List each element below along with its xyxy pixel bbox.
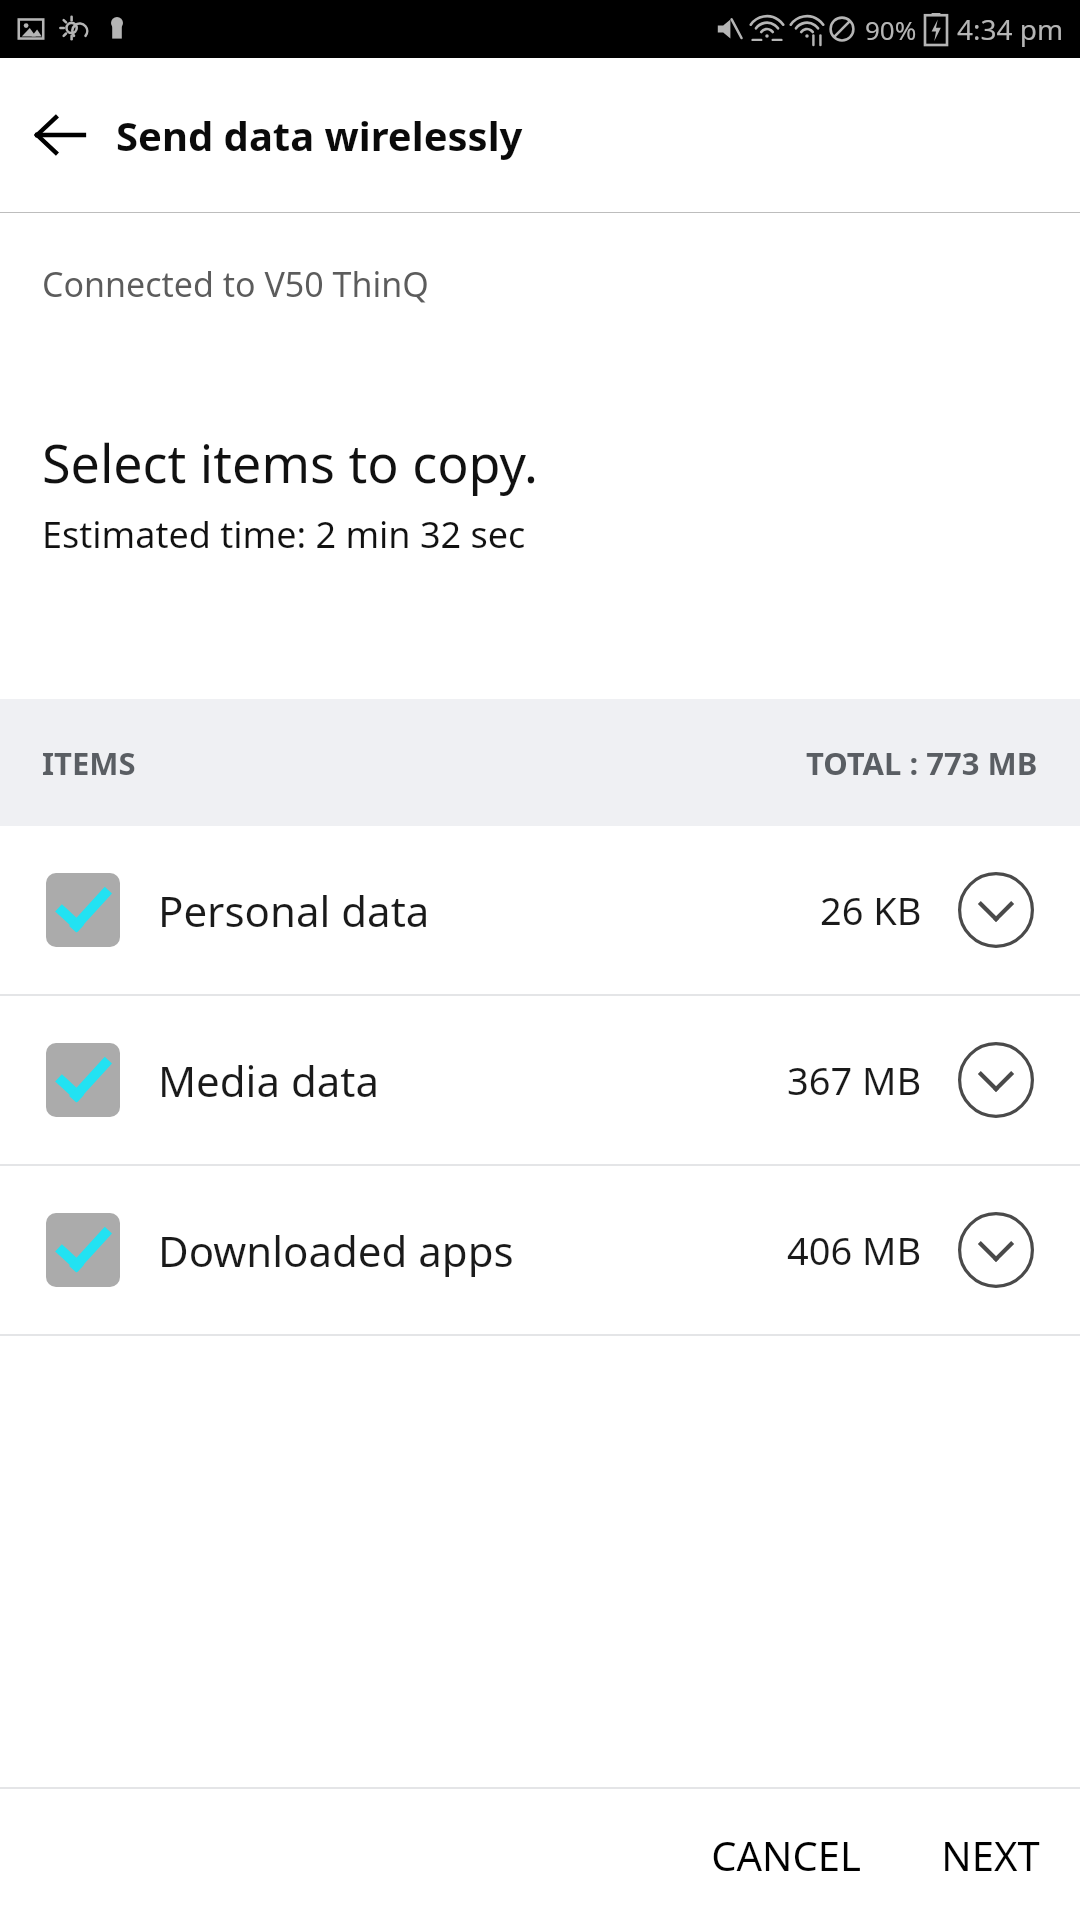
staticText: Send data wirelessly	[116, 108, 523, 162]
button[interactable]: NEXT	[915, 1789, 1066, 1920]
button[interactable]: Personal data checkbox, checked	[0, 826, 1080, 994]
button[interactable]: Expand Media data	[954, 1038, 1038, 1122]
staticText: Select items to copy.	[42, 427, 538, 498]
staticText: Downloaded apps	[158, 1222, 514, 1279]
button[interactable]: Back	[18, 93, 102, 177]
button[interactable]: Downloaded apps checkbox, checked	[0, 1166, 1080, 1334]
staticText: NEXT	[941, 1828, 1040, 1882]
staticText: Estimated time: 2 min 32 sec	[42, 510, 526, 559]
staticText: Connected to V50 ThinQ	[42, 261, 429, 307]
button[interactable]: Personal data checkbox, checked	[46, 873, 120, 947]
button[interactable]: Downloaded apps checkbox, checked	[46, 1213, 120, 1287]
staticText: Personal data	[158, 882, 430, 939]
button[interactable]: Media data checkbox, checked	[46, 1043, 120, 1117]
staticText: 4:34 pm	[957, 10, 1064, 48]
staticText: Media data	[158, 1052, 380, 1109]
staticText: 406 MB	[787, 1224, 922, 1276]
button[interactable]: Media data checkbox, checked	[0, 996, 1080, 1164]
staticText: 26 KB	[820, 884, 922, 936]
staticText: CANCEL	[711, 1828, 861, 1882]
staticText: 367 MB	[787, 1054, 922, 1106]
staticText: 90%	[865, 12, 917, 47]
staticText: TOTAL : 773 MB	[806, 742, 1038, 784]
button[interactable]: Expand Personal data	[954, 868, 1038, 952]
staticText: ITEMS	[42, 742, 136, 784]
button[interactable]: CANCEL	[685, 1789, 887, 1920]
button[interactable]: Expand Downloaded apps	[954, 1208, 1038, 1292]
